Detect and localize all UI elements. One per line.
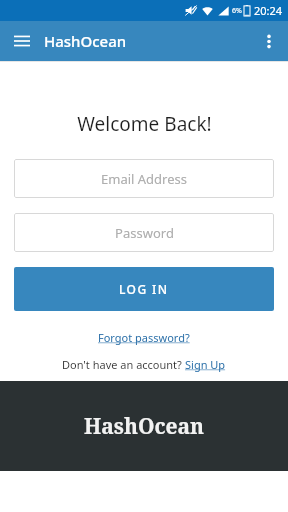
staticText: HashOcean bbox=[84, 412, 205, 441]
staticText: 6% bbox=[232, 6, 242, 16]
staticText: Forgot password? bbox=[98, 330, 190, 345]
button[interactable]: Open navigation menu bbox=[0, 21, 44, 61]
button[interactable]: Sign Up bbox=[185, 357, 226, 372]
staticText: Welcome Back! bbox=[77, 111, 212, 137]
staticText: LOG IN bbox=[119, 281, 169, 297]
button[interactable]: Password bbox=[14, 213, 274, 252]
button[interactable]: More options bbox=[250, 21, 288, 61]
staticText: Password bbox=[115, 224, 174, 242]
button[interactable]: Forgot password? bbox=[92, 328, 196, 347]
button[interactable]: LOG IN bbox=[14, 267, 274, 311]
button[interactable]: Email Address bbox=[14, 159, 274, 198]
staticText: Email Address bbox=[101, 170, 187, 188]
staticText: Sign Up bbox=[185, 357, 226, 372]
staticText: 20:24 bbox=[254, 3, 283, 18]
staticText: Don't have an account? bbox=[62, 357, 185, 372]
staticText: HashOcean bbox=[44, 31, 127, 51]
